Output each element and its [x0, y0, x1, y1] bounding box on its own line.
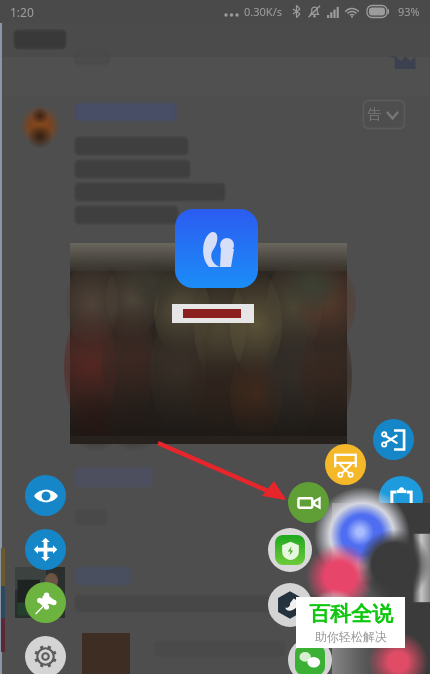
staticText: 告	[367, 106, 381, 124]
button[interactable]: Move	[25, 529, 66, 570]
staticText: 百科全说	[309, 601, 393, 627]
button[interactable]: Pin	[25, 582, 66, 623]
button[interactable]: WeChat	[288, 638, 332, 674]
button[interactable]: Security app	[268, 528, 312, 572]
staticText: 1:20	[10, 4, 34, 20]
button[interactable]: Long screenshot	[325, 444, 366, 485]
button[interactable]: Screenshot	[373, 419, 414, 460]
staticText: 0.30K/s	[244, 4, 282, 19]
button[interactable]: Settings	[25, 636, 66, 674]
button[interactable]: Browser app	[268, 583, 312, 627]
button[interactable]: Record video	[288, 482, 329, 523]
staticText: 93%	[398, 4, 420, 19]
button[interactable]: 百科全说	[296, 597, 405, 648]
staticText: 助你轻松解决	[315, 629, 387, 644]
button[interactable]: Preview	[25, 475, 66, 516]
